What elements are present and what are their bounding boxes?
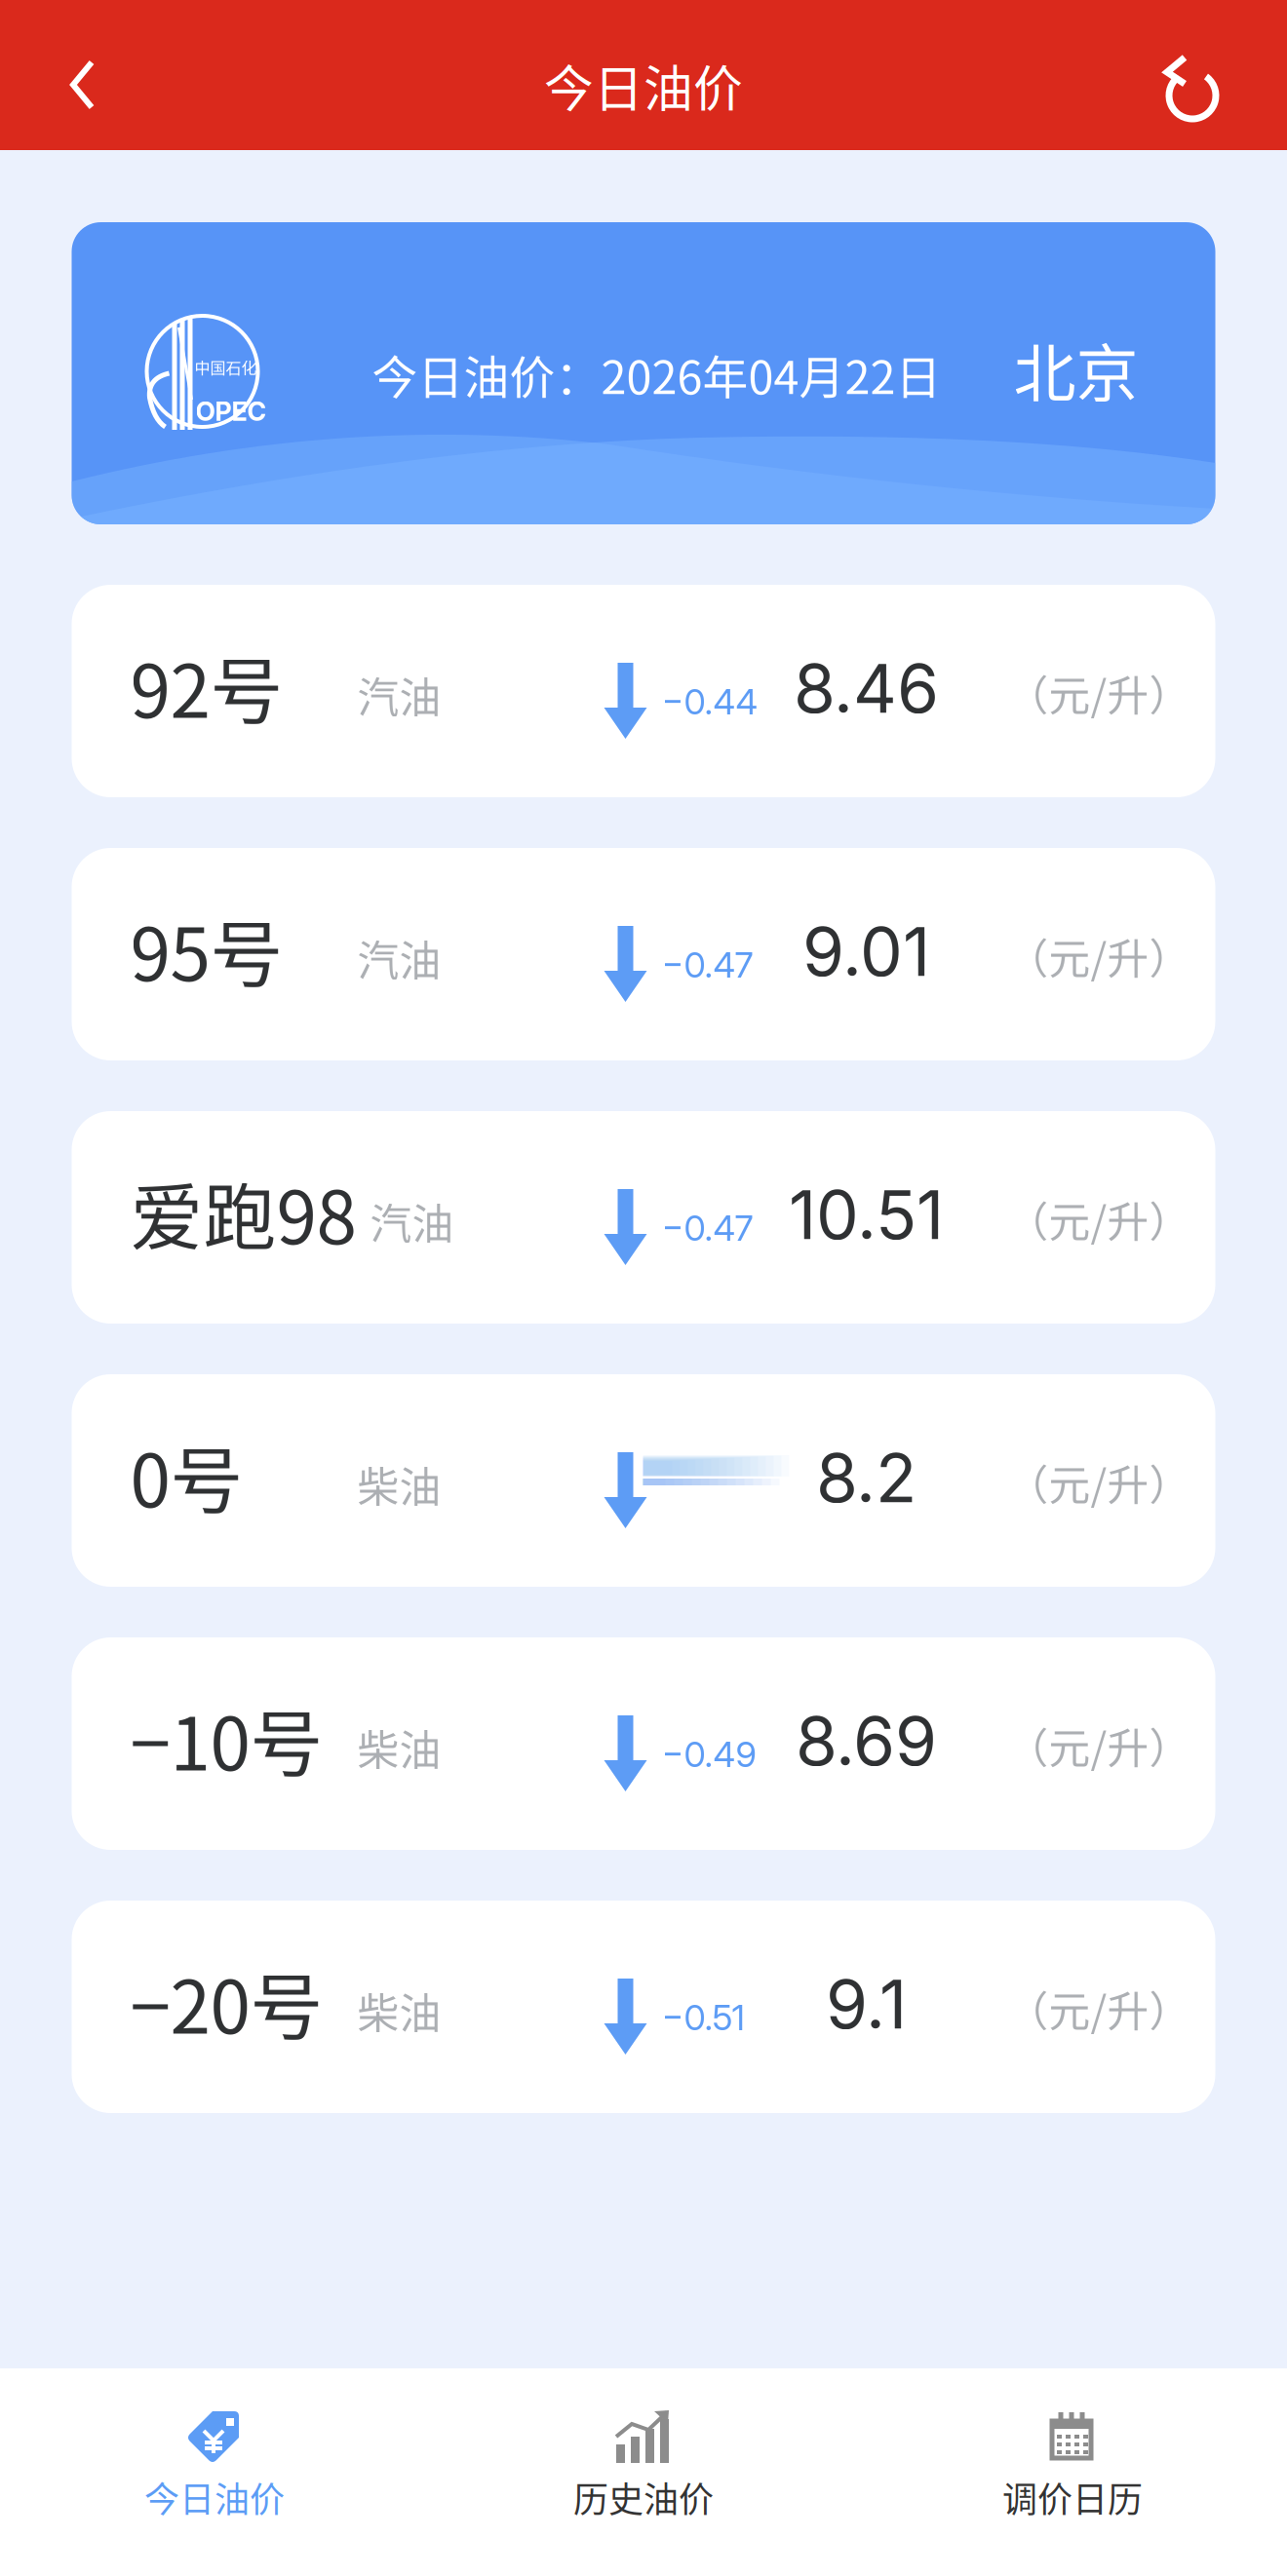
button[interactable]: 0号 <box>72 1374 1215 1587</box>
button[interactable]: 爱跑98 <box>72 1111 1215 1324</box>
staticText: 今日油价：2026年04月22日 <box>372 341 941 407</box>
staticText: 9.1 <box>826 1963 907 2045</box>
staticText: （元/升） <box>1007 1452 1191 1512</box>
button[interactable]: 历史油价 <box>429 2368 858 2576</box>
staticText: （元/升） <box>1007 1715 1191 1776</box>
staticText: 柴油 <box>357 1454 441 1514</box>
staticText: 8.2 <box>816 1437 916 1518</box>
staticText: 0号 <box>130 1423 243 1528</box>
staticText: 今日油价 <box>544 50 743 121</box>
staticText: −0.49 <box>662 1733 756 1775</box>
staticText: 今日油价 <box>144 2472 285 2522</box>
staticText: 95号 <box>130 897 283 1002</box>
button[interactable]: 今日油价 <box>0 2368 429 2576</box>
staticText: （元/升） <box>1007 1979 1191 2039</box>
staticText: 10.51 <box>789 1173 944 1255</box>
staticText: −10号 <box>130 1686 323 1792</box>
staticText: 8.69 <box>796 1700 937 1782</box>
staticText: −0.47 <box>662 943 753 986</box>
staticText: −0.47 <box>662 1207 753 1249</box>
button[interactable]: 92号 <box>72 585 1215 797</box>
staticText: （元/升） <box>1007 1189 1191 1249</box>
button[interactable]: 95号 <box>72 848 1215 1060</box>
staticText: 汽油 <box>357 928 441 988</box>
button[interactable]: 调价日历 <box>858 2368 1287 2576</box>
staticText: −0.44 <box>662 680 758 723</box>
staticText: 92号 <box>130 634 283 739</box>
staticText: −0.51 <box>662 1996 744 2039</box>
staticText: 调价日历 <box>1002 2472 1143 2522</box>
staticText: 柴油 <box>357 1717 441 1778</box>
button[interactable]: 刷新 <box>1161 10 1268 127</box>
staticText: 柴油 <box>357 1980 441 2041</box>
staticText: （元/升） <box>1007 663 1191 723</box>
staticText: 汽油 <box>357 665 441 725</box>
staticText: 中国石化 <box>195 356 257 378</box>
button[interactable]: 返回 <box>31 10 138 127</box>
staticText: 8.46 <box>794 647 939 729</box>
button[interactable]: −10号 <box>72 1637 1215 1850</box>
staticText: 历史油价 <box>573 2472 714 2522</box>
staticText: 北京 <box>1014 324 1138 414</box>
button[interactable]: −20号 <box>72 1901 1215 2113</box>
staticText: 汽油 <box>370 1191 454 1251</box>
staticText: OPEC <box>195 396 267 427</box>
staticText: −20号 <box>130 1949 323 2055</box>
staticText: （元/升） <box>1007 926 1191 986</box>
staticText: 爱跑98 <box>130 1160 356 1265</box>
staticText: 9.01 <box>802 910 930 992</box>
